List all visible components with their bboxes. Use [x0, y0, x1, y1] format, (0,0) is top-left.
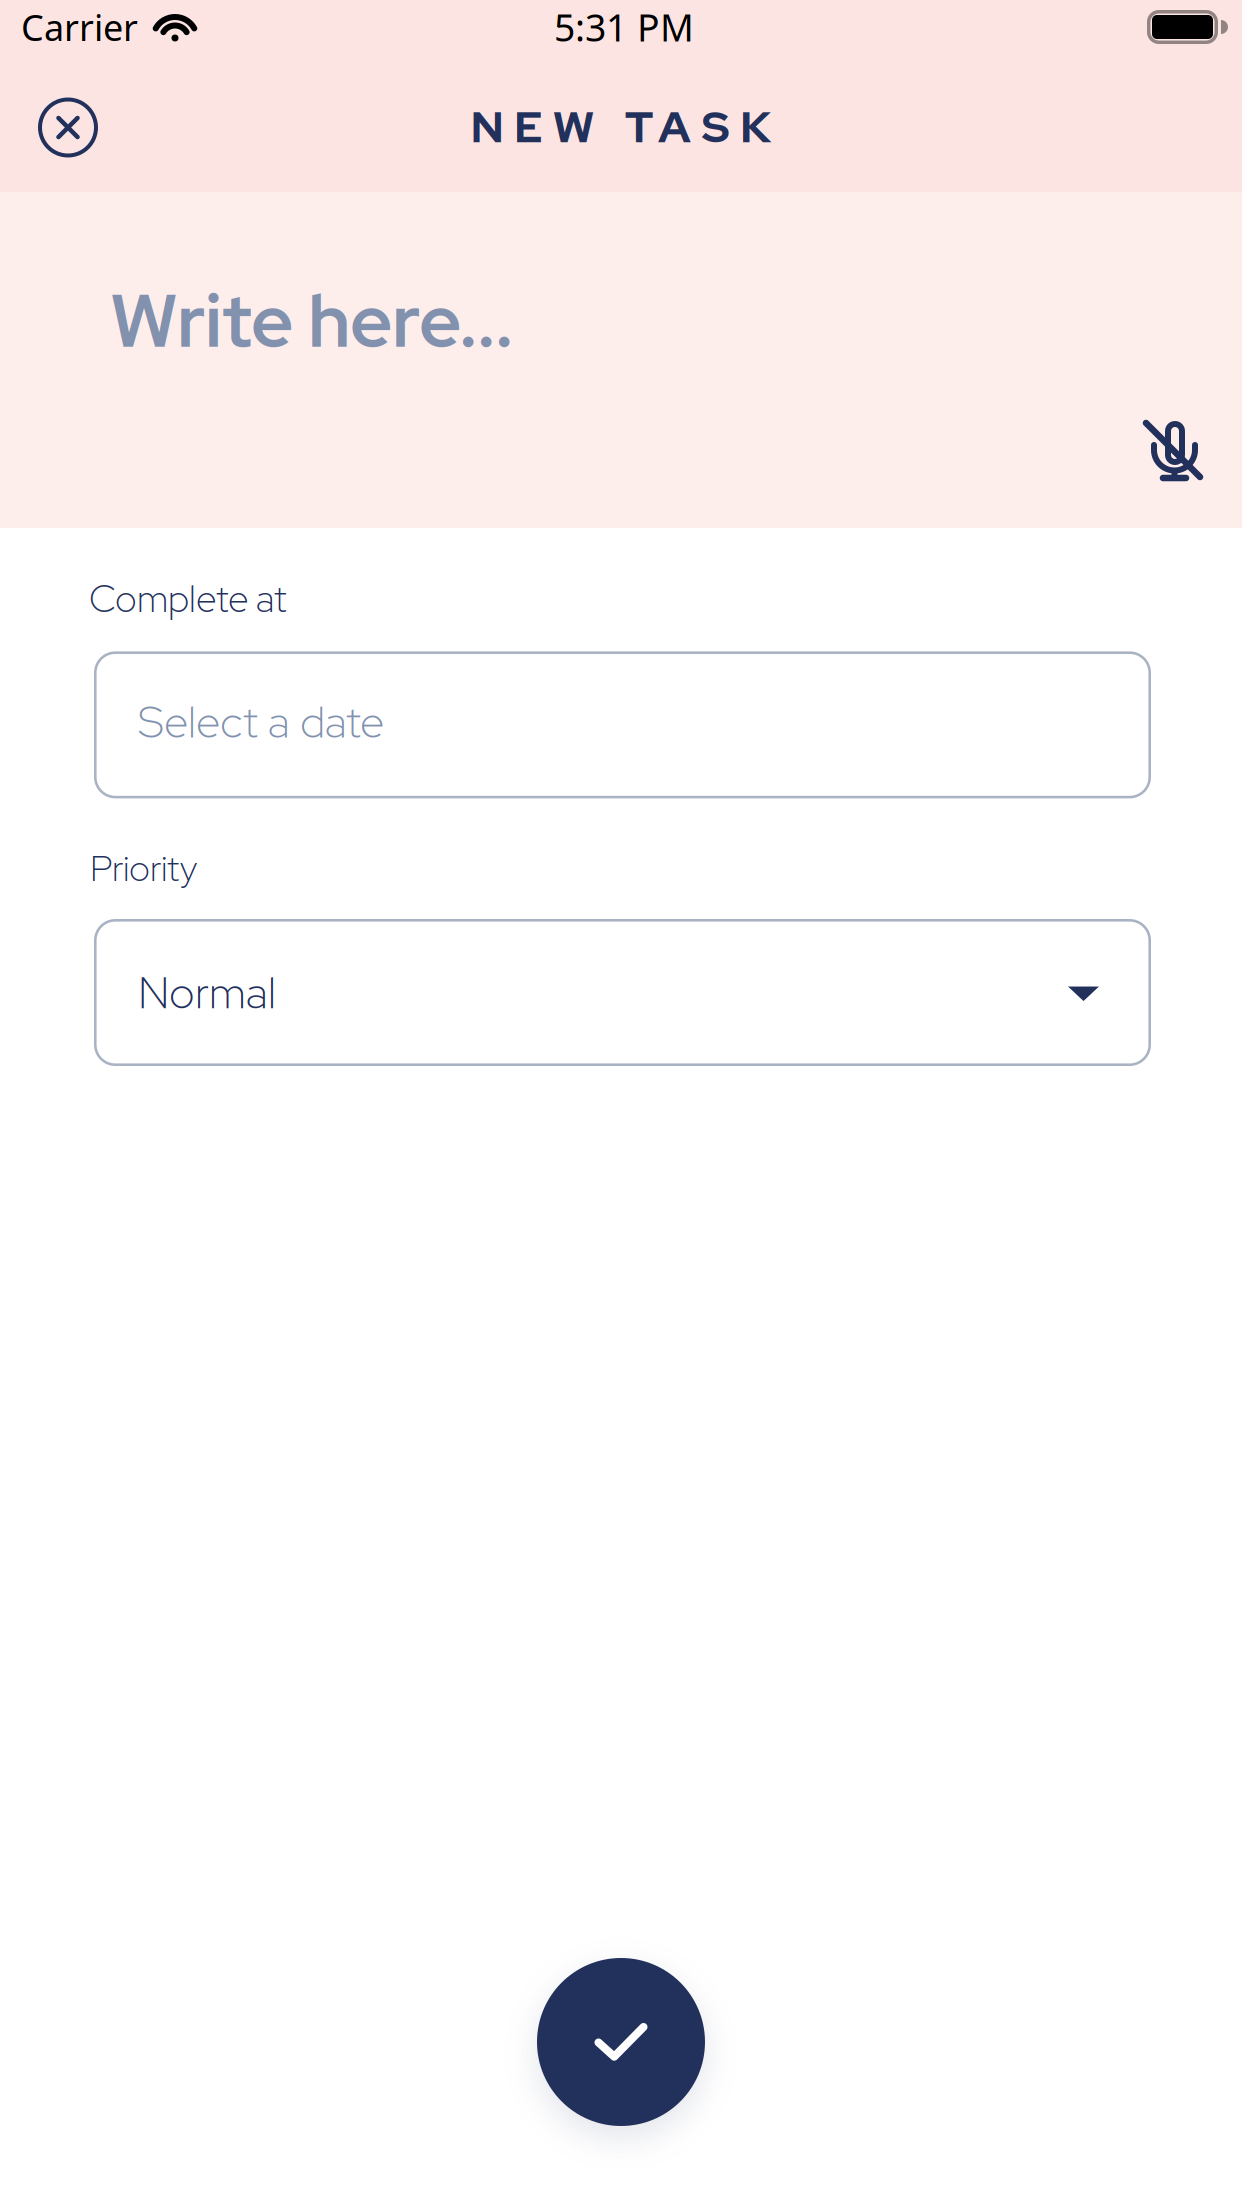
staticText: Write here... — [110, 272, 513, 369]
button[interactable]: Voice input unavailable — [1127, 404, 1219, 497]
staticText: NEW TASK — [471, 97, 771, 156]
button[interactable]: Close — [0, 74, 122, 186]
staticText: Normal — [138, 963, 276, 1022]
button[interactable]: Normal — [94, 919, 1151, 1066]
staticText: Complete at — [89, 574, 287, 623]
staticText: Select a date — [138, 693, 384, 751]
button[interactable]: Select a date — [94, 651, 1151, 798]
button[interactable]: Save task — [537, 1958, 705, 2126]
staticText: 5:31 PM — [554, 2, 694, 52]
staticText: Carrier — [21, 3, 138, 51]
staticText: Priority — [90, 844, 197, 892]
